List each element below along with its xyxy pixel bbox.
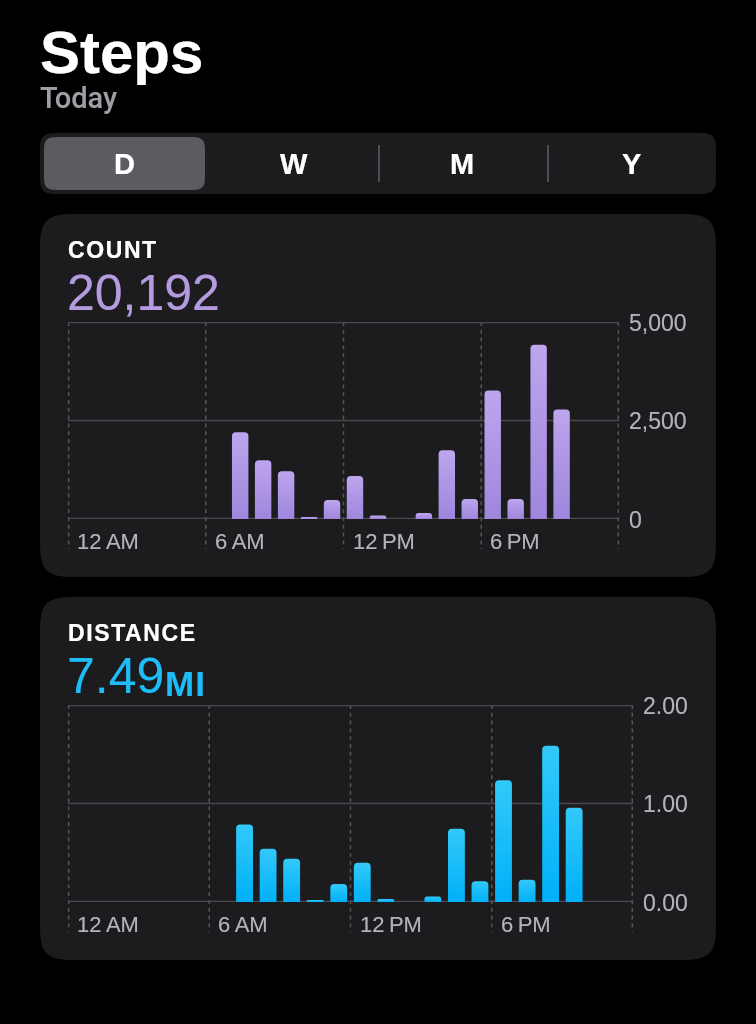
staticText: 12 AM — [77, 912, 139, 937]
staticText: 12 AM — [77, 529, 139, 554]
staticText: 0 — [629, 507, 642, 533]
button[interactable]: D — [40, 133, 209, 194]
button[interactable]: M — [378, 133, 547, 194]
button[interactable]: Y — [547, 133, 716, 194]
staticText: 6 PM — [501, 912, 551, 937]
staticText: 6 AM — [218, 912, 268, 937]
staticText: W — [280, 148, 308, 180]
staticText: 12 PM — [360, 912, 422, 937]
staticText: 7.49 — [67, 648, 165, 704]
staticText: 2.00 — [643, 693, 688, 719]
button[interactable]: W — [209, 133, 378, 194]
button[interactable]: DISTANCE — [40, 597, 716, 960]
staticText: COUNT — [68, 237, 158, 263]
staticText: M — [450, 148, 475, 180]
staticText: 2,500 — [629, 408, 687, 434]
staticText: Today — [40, 81, 118, 115]
staticText: DISTANCE — [68, 620, 197, 646]
staticText: MI — [165, 664, 207, 703]
staticText: 6 AM — [215, 529, 265, 554]
staticText: 12 PM — [353, 529, 415, 554]
staticText: D — [114, 148, 135, 180]
staticText: 0.00 — [643, 890, 688, 916]
staticText: Y — [622, 148, 642, 180]
staticText: Steps — [40, 19, 204, 86]
staticText: 1.00 — [643, 791, 688, 817]
staticText: 20,192 — [67, 265, 220, 321]
staticText: 5,000 — [629, 310, 687, 336]
staticText: 6 PM — [490, 529, 540, 554]
button[interactable]: COUNT — [40, 214, 716, 577]
